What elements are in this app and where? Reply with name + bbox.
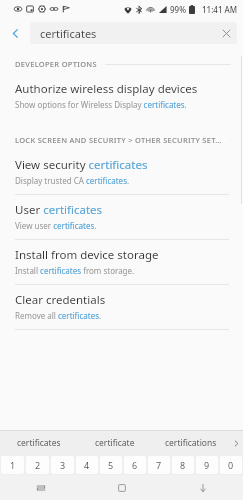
staticText: certificate (95, 437, 135, 449)
staticText: Clear credentials (15, 292, 106, 308)
button[interactable]: certificates (0, 431, 77, 455)
button[interactable]: 5 (100, 456, 122, 474)
staticText: Authorize wireless display devices (15, 81, 198, 97)
staticText: Install from device storage (15, 247, 159, 263)
button[interactable]: Authorize wireless display devices (0, 74, 243, 118)
staticText: certifications (165, 437, 217, 449)
button[interactable]: 9 (196, 456, 218, 474)
staticText: 1 (10, 459, 16, 471)
staticText: User certificates (15, 202, 103, 218)
staticText: 5 (108, 459, 114, 471)
staticText: 6 (132, 459, 138, 471)
staticText: DEVELOPER OPTIONS (15, 59, 97, 69)
button[interactable]: Clear credentials (0, 285, 243, 329)
button[interactable]: certificate (77, 431, 153, 455)
staticText: 9 (204, 459, 210, 471)
button[interactable]: User certificates (0, 195, 243, 239)
button[interactable]: 0 (220, 456, 242, 474)
button[interactable]: certifications (153, 431, 229, 455)
button[interactable]: 7 (148, 456, 170, 474)
button[interactable]: Install from device storage (0, 240, 243, 284)
staticText: 3 (60, 459, 66, 471)
button[interactable]: View security certificates (0, 150, 243, 194)
staticText: View user certificates. (15, 220, 97, 231)
staticText: LOCK SCREEN AND SECURITY > OTHER SECURIT… (15, 135, 222, 145)
staticText: Remove all certificates. (15, 310, 102, 321)
staticText: 8 (180, 459, 186, 471)
button[interactable]: 4 (76, 456, 98, 474)
button[interactable]: certificates (30, 22, 237, 44)
staticText: Display trusted CA certificates. (15, 175, 130, 186)
staticText: 99% (170, 4, 186, 15)
button[interactable]: Recent apps (0, 475, 81, 500)
button[interactable]: More suggestions (229, 431, 243, 455)
button[interactable]: 1 (1, 456, 24, 474)
staticText: Install certificates from storage. (15, 265, 135, 276)
button[interactable]: 3 (51, 456, 74, 474)
staticText: 4 (84, 459, 90, 471)
button[interactable]: Back (0, 18, 30, 48)
staticText: 0 (228, 459, 234, 471)
button[interactable]: 6 (124, 456, 146, 474)
button[interactable]: Clear search (215, 22, 237, 44)
staticText: 7 (156, 459, 162, 471)
staticText: View security certificates (15, 157, 148, 173)
button[interactable]: Hide keyboard (162, 475, 243, 500)
button[interactable]: Home (81, 475, 162, 500)
button[interactable]: 8 (172, 456, 194, 474)
staticText: 2 (35, 459, 41, 471)
button[interactable]: 2 (26, 456, 49, 474)
staticText: certificates (17, 437, 61, 449)
staticText: Show options for Wireless Display certif… (15, 99, 187, 110)
staticText: 11:41 AM (202, 4, 238, 15)
staticText: certificates (40, 26, 97, 41)
